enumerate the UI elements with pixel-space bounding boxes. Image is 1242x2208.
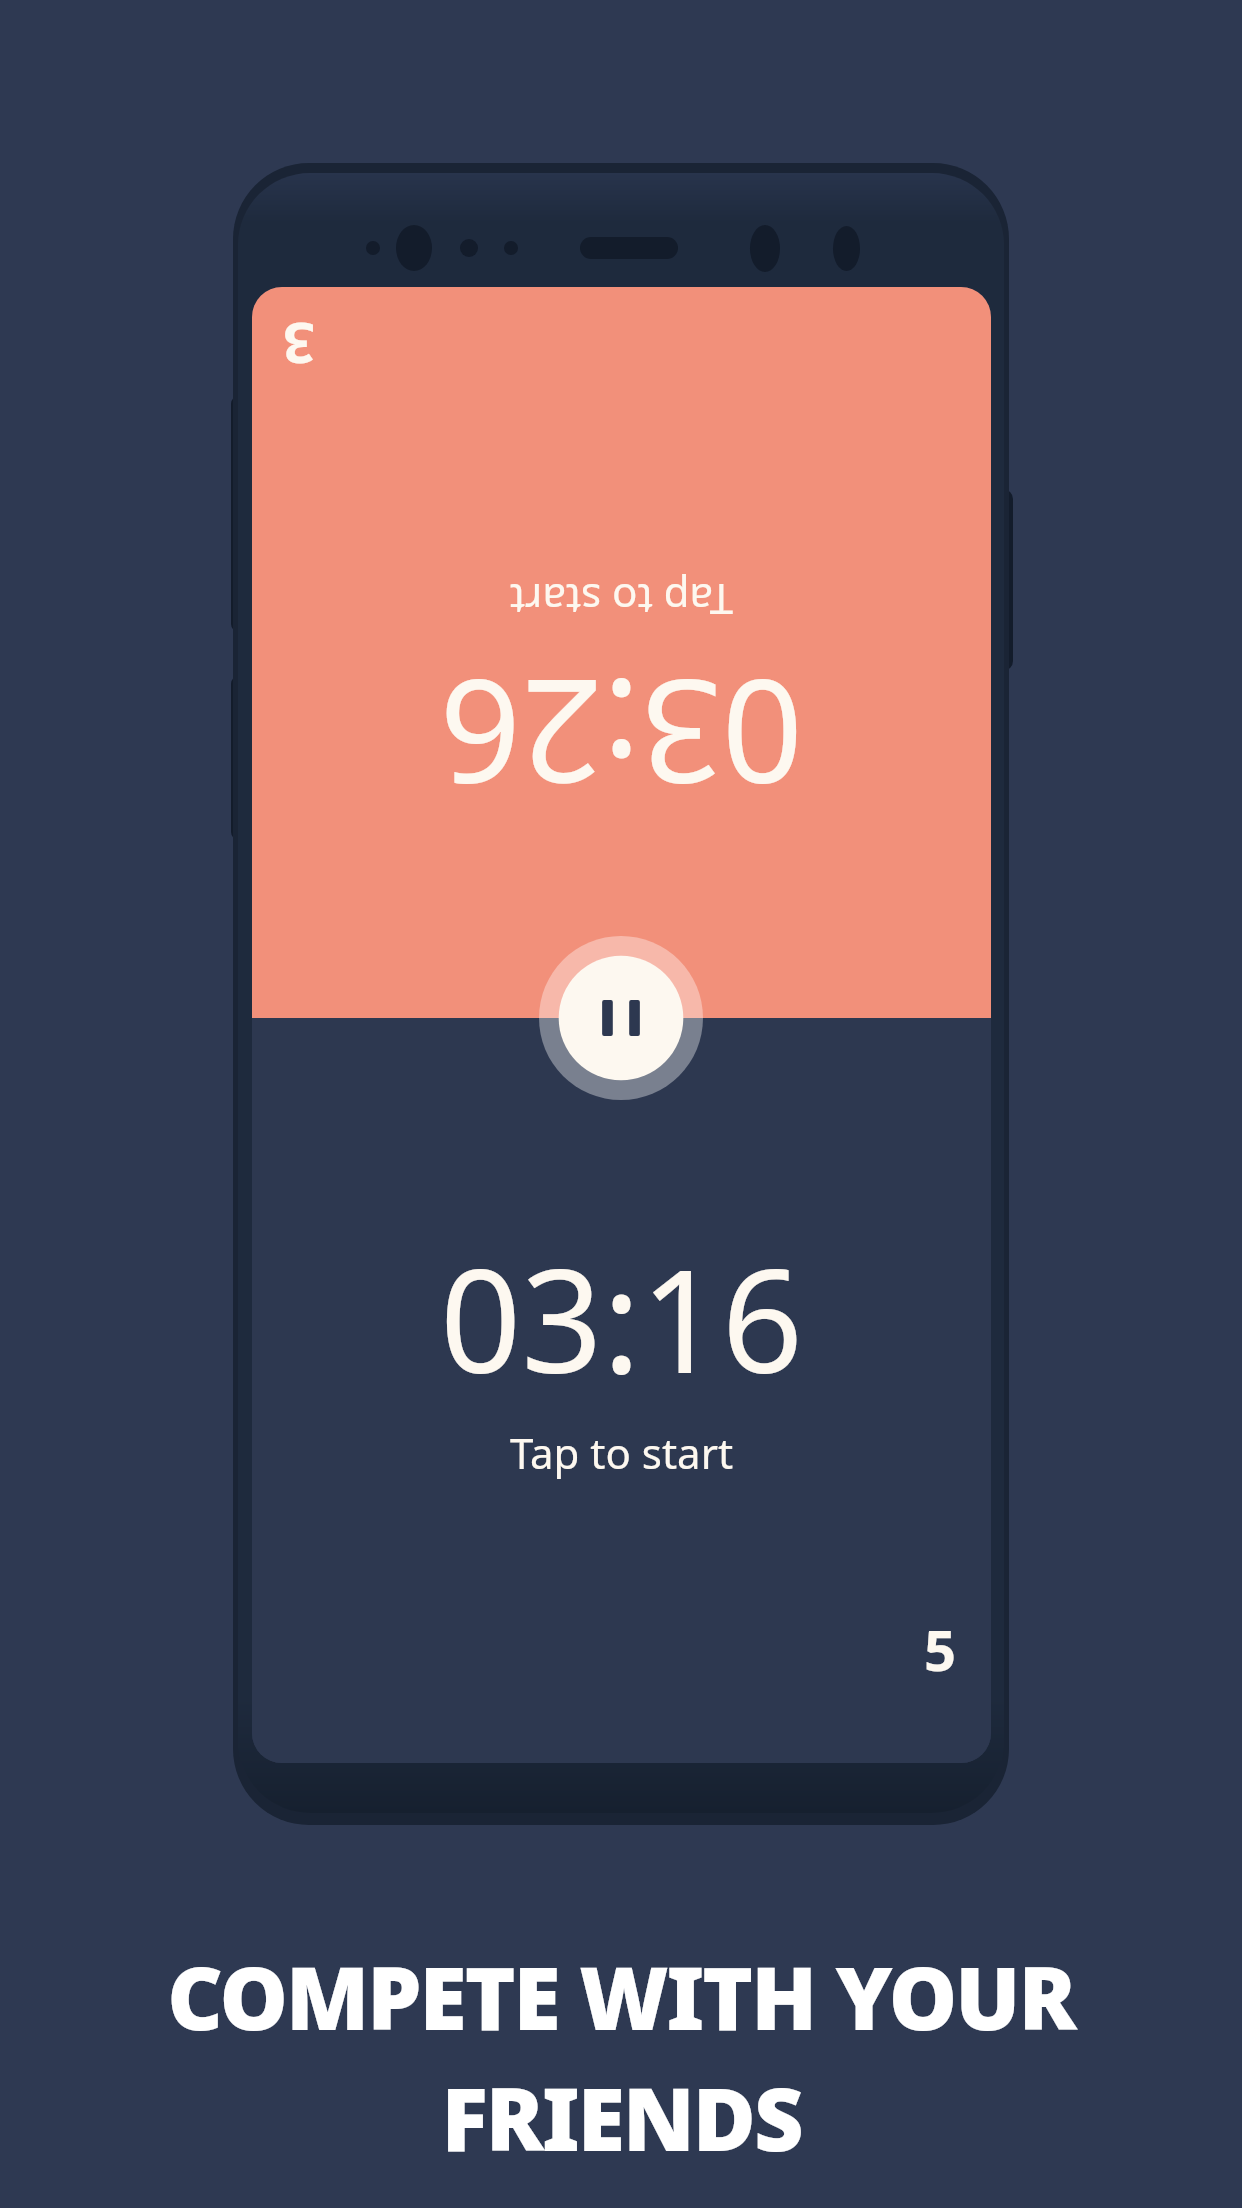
staticText: 3	[282, 307, 315, 383]
staticText: Tap to start	[510, 1424, 734, 1481]
staticText: COMPETE WITH YOUR	[167, 1938, 1075, 2055]
staticText: FRIENDS	[441, 2059, 802, 2176]
staticText: 03:16	[440, 1221, 803, 1414]
staticText: 5	[924, 1611, 957, 1687]
button[interactable]: Pause	[539, 936, 703, 1100]
staticText: 03:26	[440, 639, 803, 832]
button[interactable]: 3	[252, 287, 991, 1018]
button[interactable]: 03:16	[252, 1018, 991, 1763]
staticText: Tap to start	[509, 572, 733, 629]
